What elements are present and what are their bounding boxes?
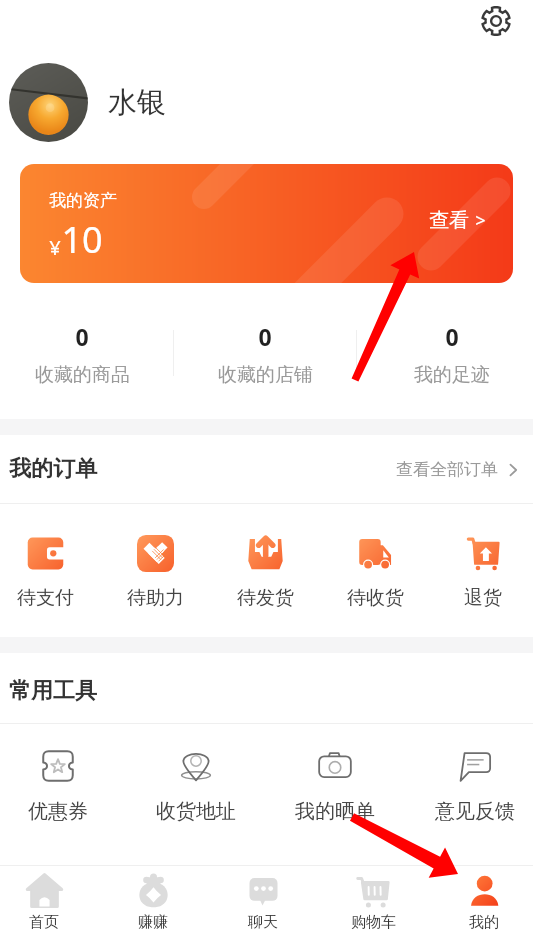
button[interactable]: 我的: [434, 866, 533, 933]
staticText: 查看全部订单: [396, 459, 498, 480]
button[interactable]: 0: [12, 283, 152, 419]
button[interactable]: 退货: [433, 504, 533, 637]
button[interactable]: 待发货: [215, 504, 315, 637]
button[interactable]: 0: [195, 283, 335, 419]
staticText: 意见反馈: [435, 799, 515, 824]
staticText: 我的资产: [49, 190, 117, 211]
staticText: 查看: [429, 208, 469, 233]
staticText: 收藏的店铺: [218, 363, 313, 387]
button[interactable]: 待支付: [0, 504, 95, 637]
button[interactable]: 查看: [429, 208, 486, 233]
staticText: 0: [258, 321, 272, 352]
staticText: 10: [61, 215, 103, 264]
button[interactable]: 我的资产: [20, 164, 513, 283]
button[interactable]: Settings: [476, 1, 516, 41]
staticText: 0: [445, 321, 459, 352]
staticText: 我的: [469, 913, 499, 932]
button[interactable]: 水银: [0, 48, 533, 157]
staticText: 我的订单: [9, 455, 97, 483]
staticText: 常用工具: [9, 677, 97, 705]
button[interactable]: 优惠券: [0, 724, 118, 865]
staticText: 我的足迹: [414, 363, 490, 387]
staticText: 0: [75, 321, 89, 352]
button[interactable]: 我的晒单: [275, 724, 395, 865]
button[interactable]: 聊天: [213, 866, 313, 933]
button[interactable]: 赚赚: [103, 866, 203, 933]
staticText: 赚赚: [138, 913, 168, 932]
staticText: 购物车: [351, 913, 396, 932]
button[interactable]: 收货地址: [136, 724, 256, 865]
staticText: 待助力: [127, 586, 184, 610]
staticText: ¥: [49, 234, 61, 261]
staticText: 退货: [464, 586, 502, 610]
staticText: 聊天: [248, 913, 278, 932]
button[interactable]: 首页: [0, 866, 94, 933]
button[interactable]: 待助力: [105, 504, 205, 637]
staticText: 收货地址: [156, 799, 236, 824]
staticText: 我的晒单: [295, 799, 375, 824]
staticText: 水银: [108, 84, 166, 121]
button[interactable]: 意见反馈: [415, 724, 533, 865]
staticText: 首页: [29, 913, 59, 932]
button[interactable]: 待收货: [325, 504, 425, 637]
staticText: 待收货: [347, 586, 404, 610]
button[interactable]: 0: [382, 283, 522, 419]
staticText: 待发货: [237, 586, 294, 610]
button[interactable]: 查看全部订单: [396, 459, 521, 480]
staticText: 待支付: [17, 586, 74, 610]
staticText: >: [475, 208, 486, 233]
staticText: 收藏的商品: [35, 363, 130, 387]
staticText: 优惠券: [28, 799, 88, 824]
button[interactable]: 购物车: [323, 866, 423, 933]
